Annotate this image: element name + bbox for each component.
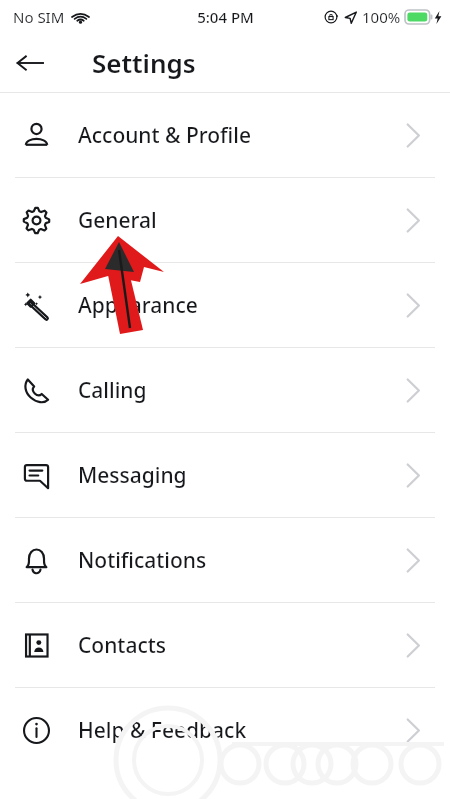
- button[interactable]: General: [0, 178, 450, 262]
- staticText: Notifications: [78, 546, 406, 575]
- button[interactable]: Calling: [0, 348, 450, 432]
- staticText: 100%: [362, 7, 401, 27]
- staticText: Messaging: [78, 461, 406, 490]
- staticText: Account & Profile: [78, 121, 406, 150]
- staticText: Help & Feedback: [78, 716, 406, 745]
- staticText: Contacts: [78, 631, 406, 660]
- button[interactable]: Account & Profile: [0, 93, 450, 177]
- staticText: No SIM: [13, 7, 65, 27]
- button[interactable]: Help & Feedback: [0, 688, 450, 772]
- staticText: Settings: [92, 45, 196, 80]
- button[interactable]: Notifications: [0, 518, 450, 602]
- button[interactable]: Contacts: [0, 603, 450, 687]
- staticText: 5:04 PM: [197, 7, 254, 27]
- button[interactable]: Back: [8, 41, 52, 85]
- staticText: Appearance: [78, 291, 406, 320]
- staticText: General: [78, 206, 406, 235]
- button[interactable]: Appearance: [0, 263, 450, 347]
- button[interactable]: Messaging: [0, 433, 450, 517]
- staticText: Calling: [78, 376, 406, 405]
